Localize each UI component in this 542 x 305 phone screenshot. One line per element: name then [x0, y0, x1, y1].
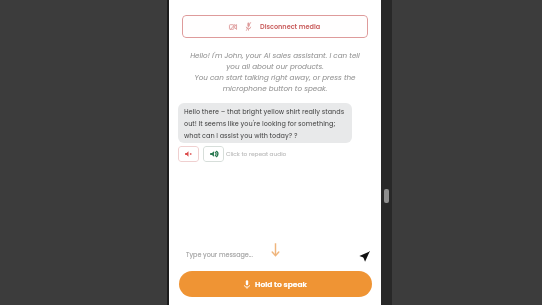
button[interactable]: Repeat audio	[203, 146, 224, 162]
button[interactable]: Scroll to bottom	[272, 243, 279, 256]
staticText: Type your message...	[186, 250, 253, 259]
staticText: Disconnect media	[260, 22, 321, 31]
staticText: Click to repeat audio	[226, 150, 287, 158]
staticText: Hello there – that bright yellow shirt r…	[184, 107, 351, 140]
button[interactable]: Disconnect media	[182, 15, 368, 38]
button[interactable]: Stop audio	[178, 146, 199, 162]
staticText: Hold to speak	[255, 279, 307, 289]
button[interactable]: Send message	[357, 249, 371, 263]
staticText: Hello! I'm John, your AI sales assistant…	[169, 50, 381, 94]
button[interactable]: Hold to speak	[179, 271, 372, 297]
